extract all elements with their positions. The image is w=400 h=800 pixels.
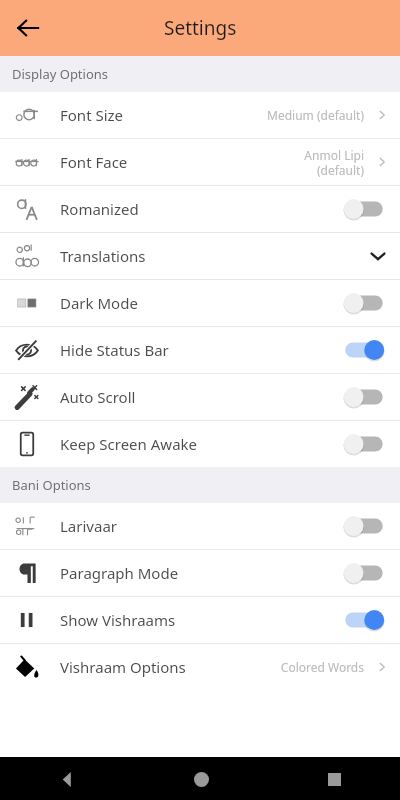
- button[interactable]: Dark Mode: [0, 280, 400, 326]
- staticText: Larivaar: [60, 516, 117, 536]
- staticText: Show Vishraams: [60, 610, 176, 630]
- staticText: Paragraph Mode: [60, 563, 179, 583]
- staticText: Auto Scroll: [60, 387, 136, 407]
- button[interactable]: Paragraph Mode: [0, 550, 400, 596]
- staticText: Keep Screen Awake: [60, 434, 198, 454]
- button[interactable]: Larivaar: [0, 503, 400, 549]
- staticText: Anmol Lipi (default): [304, 147, 364, 178]
- button[interactable]: Off: [340, 511, 388, 541]
- button[interactable]: Back: [8, 8, 48, 48]
- button[interactable]: Hide Status Bar: [0, 327, 400, 373]
- staticText: Translations: [60, 246, 146, 266]
- button[interactable]: Font Size: [0, 92, 400, 138]
- button[interactable]: Show Vishraams: [0, 597, 400, 643]
- staticText: Medium (default): [267, 107, 364, 123]
- button[interactable]: Off: [340, 382, 388, 412]
- staticText: Vishraam Options: [60, 657, 186, 677]
- staticText: Hide Status Bar: [60, 340, 169, 360]
- button[interactable]: Font Face: [0, 139, 400, 185]
- button[interactable]: Back: [49, 761, 85, 797]
- button[interactable]: Off: [340, 194, 388, 224]
- staticText: Colored Words: [280, 659, 364, 675]
- button[interactable]: Auto Scroll: [0, 374, 400, 420]
- staticText: Bani Options: [12, 476, 91, 494]
- button[interactable]: Translations: [0, 233, 400, 279]
- button[interactable]: Recents: [316, 761, 352, 797]
- button[interactable]: On: [340, 335, 388, 365]
- button[interactable]: On: [340, 605, 388, 635]
- button[interactable]: Off: [340, 429, 388, 459]
- staticText: Settings: [164, 15, 237, 41]
- staticText: Font Size: [60, 105, 124, 125]
- button[interactable]: Off: [340, 558, 388, 588]
- button[interactable]: Off: [340, 288, 388, 318]
- staticText: Font Face: [60, 152, 128, 172]
- button[interactable]: Keep Screen Awake: [0, 421, 400, 467]
- button[interactable]: Vishraam Options: [0, 644, 400, 690]
- staticText: Romanized: [60, 199, 139, 219]
- staticText: Display Options: [12, 65, 109, 83]
- staticText: Dark Mode: [60, 293, 138, 313]
- button[interactable]: Romanized: [0, 186, 400, 232]
- button[interactable]: Home: [183, 761, 219, 797]
